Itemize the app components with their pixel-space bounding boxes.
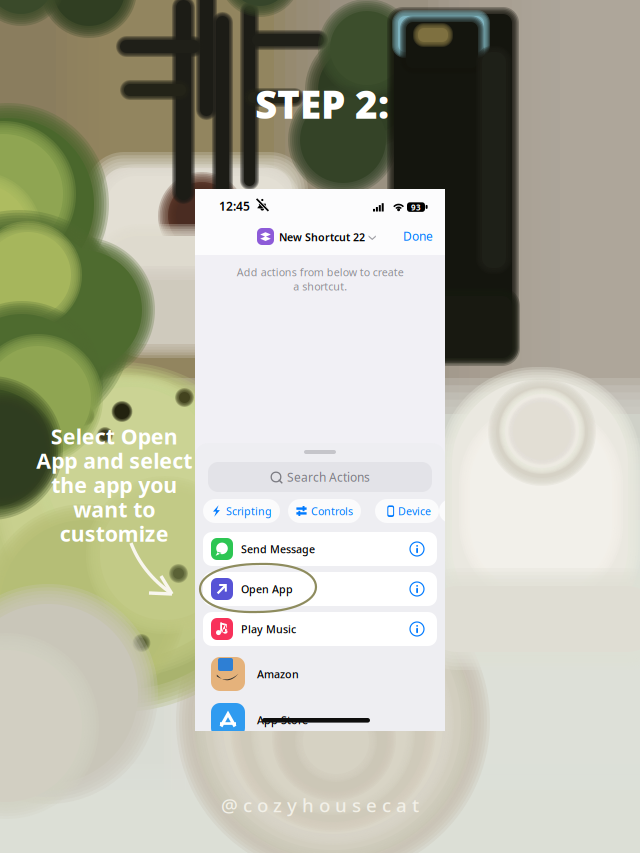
staticText: Controls <box>311 504 353 518</box>
staticText: Done <box>403 228 433 244</box>
staticText: Search Actions <box>287 469 370 485</box>
button[interactable]: Send Message <box>203 532 437 566</box>
button[interactable]: Controls <box>288 499 361 523</box>
staticText: Scripting <box>226 504 272 518</box>
staticText: Add actions from below to create a short… <box>236 265 403 293</box>
staticText: New Shortcut 22 <box>279 230 365 244</box>
staticText: STEP 2: <box>255 78 389 129</box>
staticText: Send Message <box>241 542 315 556</box>
button[interactable]: Done <box>195 189 239 207</box>
staticText: 12:45 <box>219 198 250 214</box>
button[interactable]: Search Actions <box>208 462 432 492</box>
staticText: Open App <box>241 582 293 596</box>
button[interactable]: Share <box>439 499 499 523</box>
staticText: @ c o z y h o u s e c a t <box>221 793 419 817</box>
staticText: App Store <box>257 713 308 727</box>
staticText: Play Music <box>241 622 296 636</box>
button[interactable]: Play Music <box>203 612 437 646</box>
button[interactable]: Scripting <box>203 499 280 523</box>
staticText: 93 <box>411 202 421 213</box>
button[interactable]: Amazon <box>195 651 445 698</box>
button[interactable]: App Store <box>195 697 445 744</box>
staticText: Amazon <box>257 667 299 681</box>
button[interactable]: Device <box>375 499 439 523</box>
button[interactable]: Open App <box>203 572 437 606</box>
staticText: Select Open App and select the app you w… <box>36 422 192 548</box>
staticText: Device <box>398 504 431 518</box>
